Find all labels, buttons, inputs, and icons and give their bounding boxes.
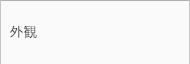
staticText: 外観	[10, 23, 37, 40]
button[interactable]: 外観	[0, 0, 190, 64]
